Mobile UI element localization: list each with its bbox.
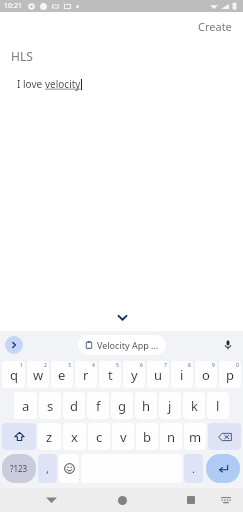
staticText: c — [96, 428, 103, 446]
staticText: l — [216, 397, 220, 415]
button[interactable]: Expand suggestions — [5, 336, 23, 354]
button[interactable]: m — [184, 423, 206, 450]
staticText: i — [180, 366, 184, 384]
button[interactable]: p — [219, 361, 241, 388]
staticText: 9 — [212, 362, 215, 369]
staticText: n — [167, 428, 176, 446]
staticText: ?123 — [10, 463, 28, 474]
staticText: p — [226, 366, 234, 384]
staticText: 4 — [92, 362, 95, 369]
button[interactable]: k — [183, 392, 205, 419]
button[interactable]: t — [99, 361, 121, 388]
button[interactable]: ?123 — [2, 454, 36, 483]
button[interactable]: b — [136, 423, 158, 450]
button[interactable]: v — [112, 423, 134, 450]
button[interactable]: j — [159, 392, 181, 419]
button[interactable]: q — [2, 361, 25, 388]
button[interactable]: d — [63, 392, 85, 419]
staticText: 3 — [68, 362, 71, 369]
staticText: 0 — [236, 362, 239, 369]
staticText: b — [143, 428, 151, 446]
button[interactable]: Switch keyboard — [218, 492, 234, 508]
button[interactable]: h — [135, 392, 157, 419]
button[interactable]: Create — [187, 12, 243, 41]
staticText: a — [22, 397, 30, 415]
staticText: , — [46, 461, 49, 476]
staticText: k — [191, 397, 198, 415]
staticText: I love — [17, 77, 45, 91]
button[interactable]: e — [51, 361, 73, 388]
staticText: m — [189, 428, 202, 446]
button[interactable]: c — [88, 423, 110, 450]
staticText: s — [47, 397, 54, 415]
staticText: z — [46, 428, 53, 446]
button[interactable]: s — [39, 392, 61, 419]
staticText: f — [96, 397, 101, 415]
button[interactable]: g — [111, 392, 133, 419]
button[interactable]: u — [147, 361, 169, 388]
button[interactable]: Recents — [182, 491, 200, 509]
button[interactable]: a — [14, 392, 37, 419]
staticText: e — [58, 366, 66, 384]
button[interactable]: , — [38, 454, 57, 483]
button[interactable]: f — [87, 392, 109, 419]
button[interactable]: Back — [42, 491, 60, 509]
button[interactable]: Backspace — [208, 423, 241, 450]
staticText: 8 — [188, 362, 191, 369]
staticText: o — [202, 366, 210, 384]
staticText: 6 — [140, 362, 143, 369]
button[interactable]: z — [38, 423, 61, 450]
staticText: q — [10, 366, 18, 384]
button[interactable]: Home — [113, 491, 131, 509]
staticText: y — [131, 366, 138, 384]
button[interactable]: w — [27, 361, 49, 388]
button[interactable]: Voice input — [220, 337, 236, 353]
button[interactable]: Enter — [206, 454, 240, 483]
staticText: r — [83, 366, 89, 384]
staticText: Create — [198, 19, 232, 34]
staticText: 1 — [20, 362, 23, 369]
button[interactable]: n — [160, 423, 182, 450]
button[interactable]: Emoji — [59, 454, 79, 483]
staticText: 2 — [44, 362, 47, 369]
staticText: HLS — [11, 48, 33, 64]
staticText: 5 — [116, 362, 119, 369]
staticText: u — [154, 366, 163, 384]
staticText: j — [168, 397, 172, 415]
button[interactable]: . — [184, 454, 203, 483]
button[interactable]: Hide keyboard — [112, 307, 132, 327]
staticText: 7 — [164, 362, 167, 369]
button[interactable]: l — [207, 392, 229, 419]
staticText: h — [142, 397, 151, 415]
staticText: . — [192, 461, 195, 476]
button[interactable]: y — [123, 361, 145, 388]
button[interactable]: x — [63, 423, 86, 450]
staticText: g — [118, 397, 126, 415]
button[interactable]: Velocity App ... — [78, 335, 166, 355]
staticText: Velocity App ... — [97, 339, 159, 351]
staticText: velocity — [45, 77, 81, 91]
staticText: t — [108, 366, 113, 384]
staticText: 10:21 — [4, 1, 22, 11]
staticText: w — [33, 366, 44, 384]
staticText: v — [120, 428, 127, 446]
button[interactable]: I love — [0, 77, 243, 91]
button[interactable]: Shift — [2, 423, 36, 450]
staticText: x — [71, 428, 78, 446]
button[interactable]: r — [75, 361, 97, 388]
button[interactable]: o — [195, 361, 217, 388]
button[interactable]: i — [171, 361, 193, 388]
staticText: d — [70, 397, 78, 415]
